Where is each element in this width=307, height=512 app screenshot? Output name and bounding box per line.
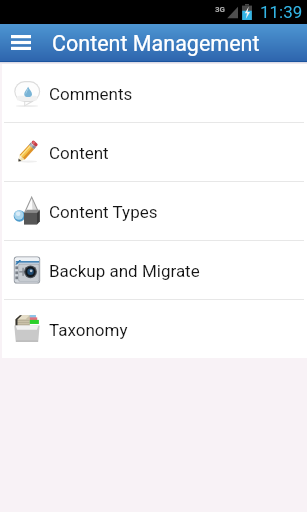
button[interactable]: Content Types <box>2 182 307 240</box>
button[interactable]: Comments <box>2 64 307 122</box>
staticText: Comments <box>49 84 133 104</box>
staticText: Content Management <box>52 31 260 56</box>
button[interactable]: Taxonomy <box>2 300 307 358</box>
button[interactable]: Content <box>2 123 307 181</box>
staticText: Taxonomy <box>49 320 128 340</box>
staticText: Content Types <box>49 202 158 222</box>
button[interactable]: Backup and Migrate <box>2 241 307 299</box>
staticText: Backup and Migrate <box>49 261 200 281</box>
button[interactable]: Open navigation menu <box>0 24 42 61</box>
staticText: 11:39 <box>260 2 303 22</box>
staticText: Content <box>49 143 109 163</box>
staticText: 3G <box>215 5 226 14</box>
